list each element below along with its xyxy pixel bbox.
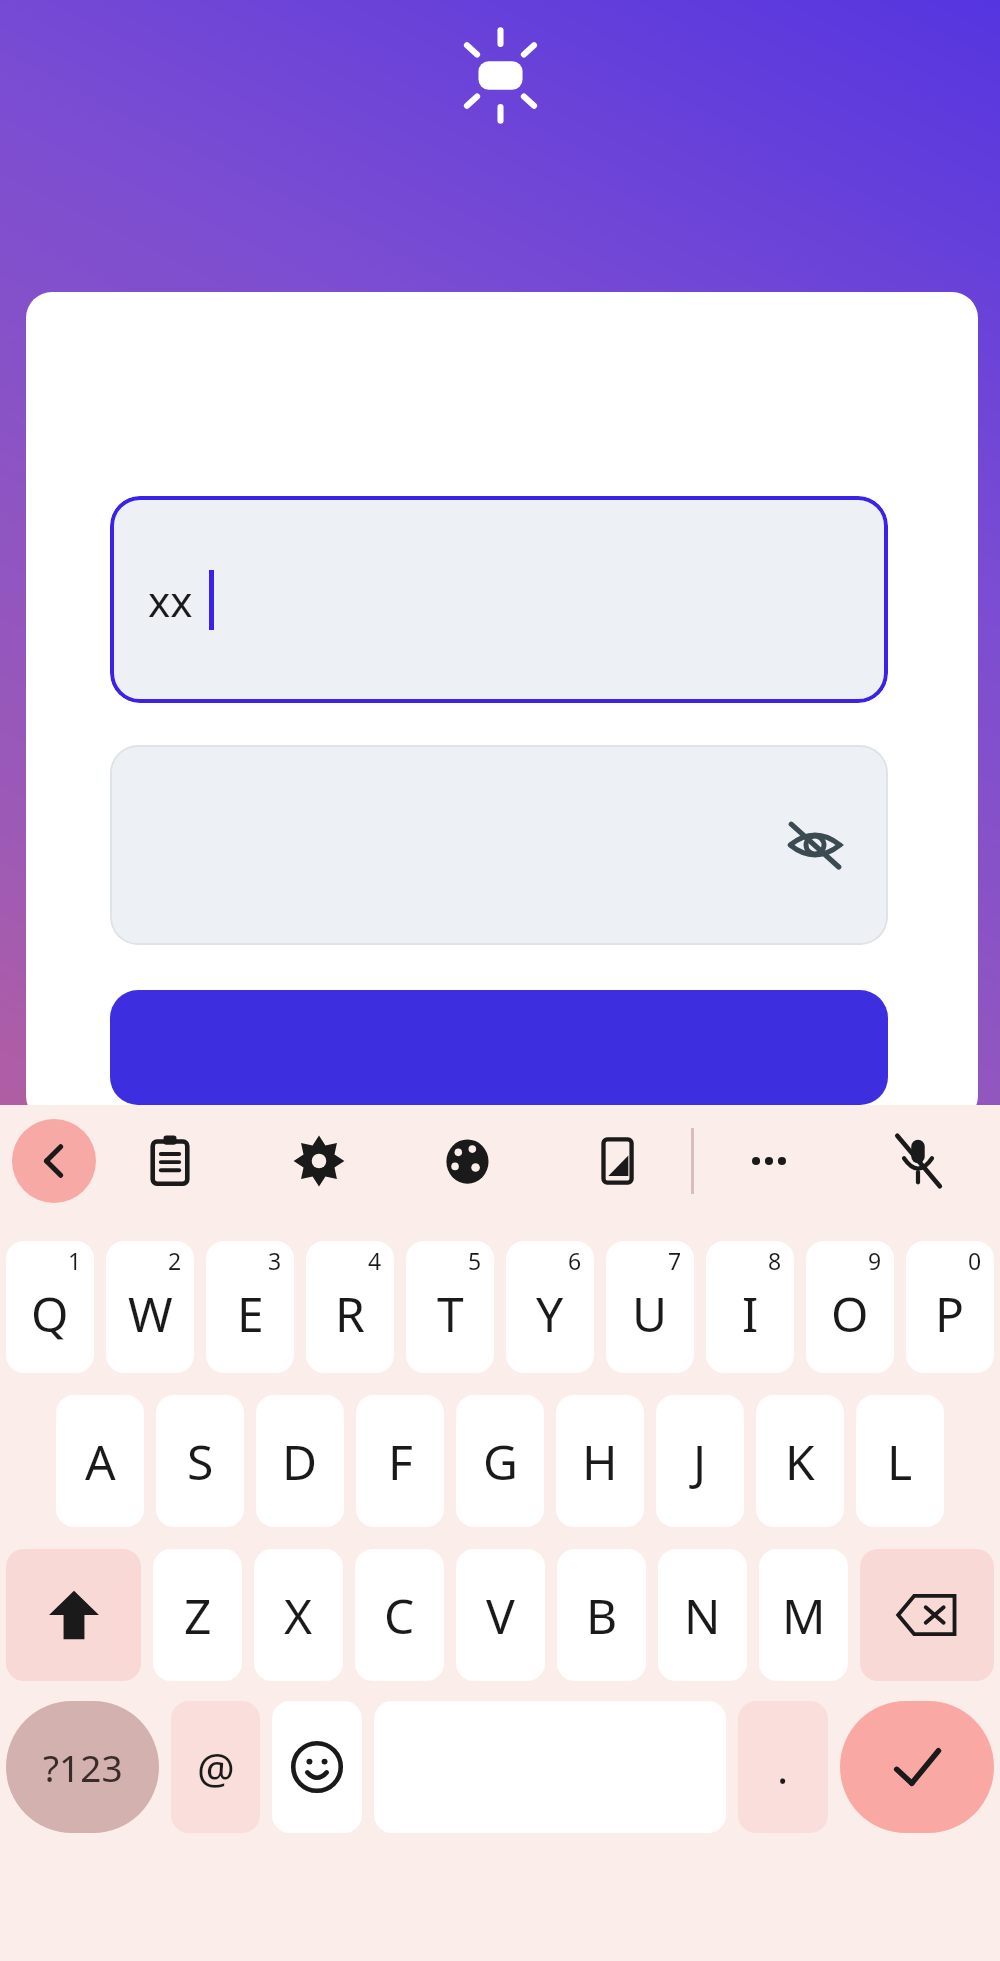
button[interactable]: Enter [840, 1701, 994, 1833]
staticText: J [693, 1429, 707, 1494]
staticText: L [887, 1429, 913, 1494]
button[interactable] [110, 990, 888, 1105]
staticText: Y [536, 1281, 564, 1346]
button[interactable]: Show password [110, 745, 888, 945]
button[interactable]: K [756, 1395, 844, 1527]
staticText: 8 [768, 1245, 782, 1276]
button[interactable]: Z [153, 1549, 242, 1681]
button[interactable]: Settings [244, 1105, 393, 1217]
button[interactable]: X [254, 1549, 343, 1681]
staticText: X [284, 1583, 313, 1648]
staticText: . [777, 1739, 789, 1796]
staticText: P [935, 1281, 965, 1346]
staticText: 0 [968, 1245, 982, 1276]
button[interactable]: 8 [706, 1241, 794, 1373]
button[interactable]: G [456, 1395, 544, 1527]
staticText: 7 [668, 1245, 682, 1276]
button[interactable]: Resize keyboard [542, 1105, 691, 1217]
button[interactable]: N [658, 1549, 747, 1681]
staticText: M [782, 1583, 826, 1648]
staticText: Q [31, 1281, 69, 1346]
staticText: 9 [868, 1245, 882, 1276]
staticText: R [335, 1281, 365, 1346]
button[interactable]: 2 [106, 1241, 194, 1373]
button[interactable]: C [355, 1549, 444, 1681]
staticText: 4 [368, 1245, 382, 1276]
button[interactable]: More options [694, 1105, 843, 1217]
button[interactable]: 3 [206, 1241, 294, 1373]
staticText: K [785, 1429, 815, 1494]
button[interactable]: F [356, 1395, 444, 1527]
button[interactable]: 9 [806, 1241, 894, 1373]
button[interactable]: Backspace [860, 1549, 994, 1681]
staticText: 5 [468, 1245, 482, 1276]
button[interactable]: 0 [906, 1241, 994, 1373]
button[interactable]: ?123 [6, 1701, 159, 1833]
button[interactable]: 7 [606, 1241, 694, 1373]
staticText: G [483, 1429, 518, 1494]
staticText: 3 [268, 1245, 282, 1276]
button[interactable]: Microphone off [843, 1105, 992, 1217]
button[interactable]: D [256, 1395, 344, 1527]
staticText: @ [197, 1739, 235, 1796]
button[interactable]: Theme [393, 1105, 542, 1217]
button[interactable]: 1 [6, 1241, 94, 1373]
staticText: I [742, 1281, 759, 1346]
staticText: xx [148, 572, 193, 629]
button[interactable]: A [56, 1395, 144, 1527]
staticText: V [486, 1583, 515, 1648]
staticText: U [632, 1281, 668, 1346]
button[interactable]: M [759, 1549, 848, 1681]
other: Brightness [448, 23, 553, 128]
staticText: B [586, 1583, 618, 1648]
staticText: 1 [68, 1245, 82, 1276]
staticText: Z [184, 1583, 212, 1648]
staticText: O [831, 1281, 869, 1346]
button[interactable]: B [557, 1549, 646, 1681]
button[interactable]: Show password [776, 806, 854, 884]
staticText: N [684, 1583, 721, 1648]
staticText: S [187, 1429, 214, 1494]
button[interactable]: Clipboard [96, 1105, 244, 1217]
button[interactable]: Shift [6, 1549, 141, 1681]
staticText: C [384, 1583, 415, 1648]
button[interactable]: Emoji [272, 1701, 362, 1833]
button[interactable]: 6 [506, 1241, 594, 1373]
staticText: 2 [168, 1245, 182, 1276]
staticText: E [237, 1281, 264, 1346]
button[interactable]: Back [12, 1119, 96, 1203]
staticText: ?123 [43, 1742, 123, 1792]
staticText: A [85, 1429, 116, 1494]
staticText: 6 [568, 1245, 582, 1276]
staticText: H [582, 1429, 618, 1494]
button[interactable]: S [156, 1395, 244, 1527]
staticText: D [282, 1429, 318, 1494]
button[interactable]: L [856, 1395, 944, 1527]
staticText: F [388, 1429, 413, 1494]
button[interactable]: @ [171, 1701, 260, 1833]
button[interactable]: H [556, 1395, 644, 1527]
button[interactable]: J [656, 1395, 744, 1527]
button[interactable]: xx [110, 496, 888, 703]
button[interactable]: V [456, 1549, 545, 1681]
button[interactable]: . [738, 1701, 828, 1833]
button[interactable]: 5 [406, 1241, 494, 1373]
button[interactable]: 4 [306, 1241, 394, 1373]
staticText: W [128, 1281, 173, 1346]
staticText: T [437, 1281, 464, 1346]
